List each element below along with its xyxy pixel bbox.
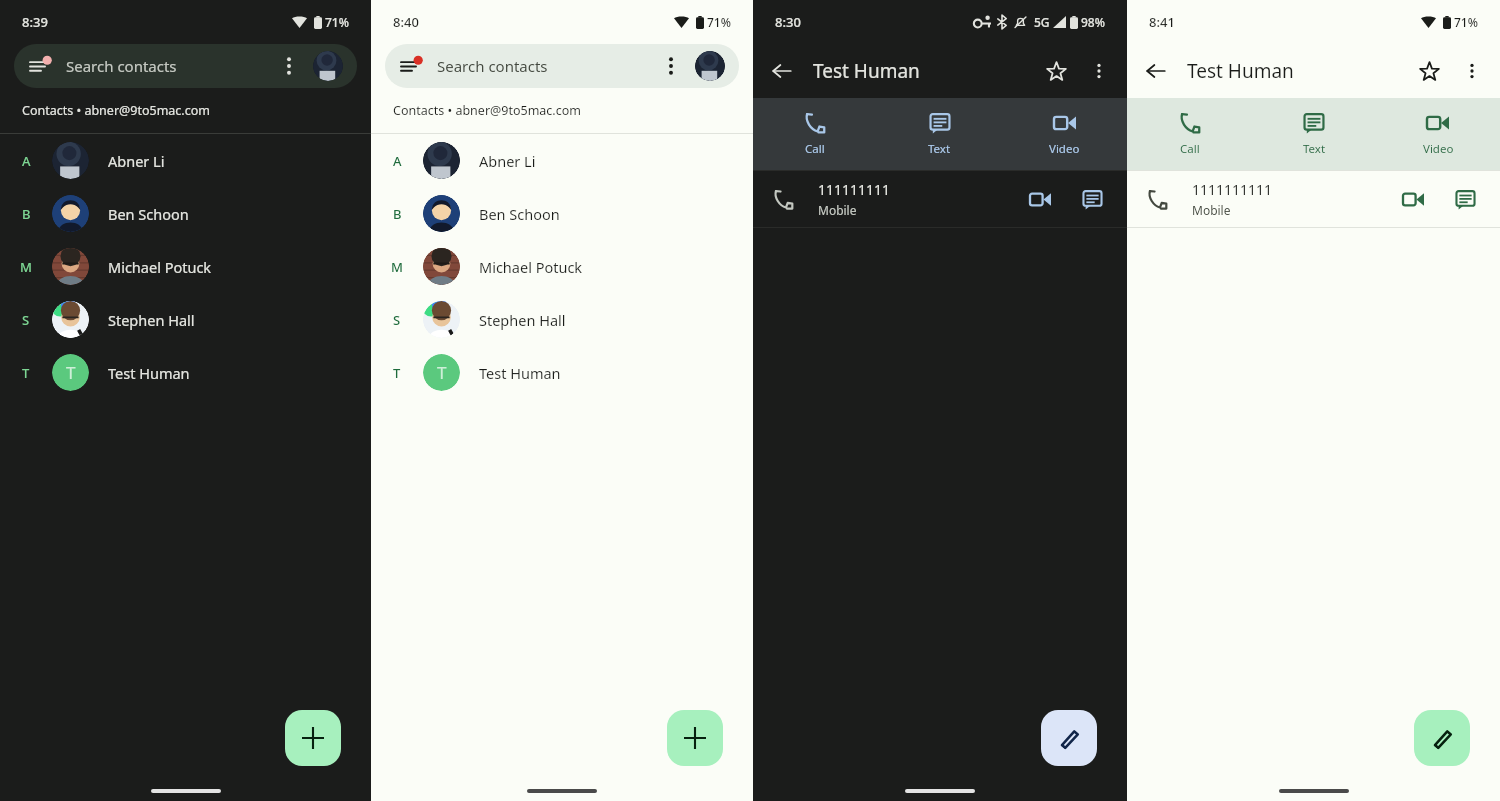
staticText: T [66, 361, 76, 384]
staticText: 8:41 [1149, 13, 1175, 31]
button[interactable]: Favorite [1041, 56, 1071, 86]
staticText: Test Human [813, 58, 920, 84]
button[interactable]: Video [1376, 98, 1500, 170]
button[interactable]: Send message [1450, 184, 1480, 214]
other: Menu [28, 54, 52, 78]
button[interactable]: Account [313, 51, 343, 81]
staticText: Stephen Hall [108, 310, 195, 330]
button[interactable]: More options [277, 54, 301, 78]
other: Menu [399, 54, 423, 78]
button[interactable]: Back [767, 56, 797, 86]
staticText: A [22, 152, 31, 170]
button[interactable]: Text [1252, 98, 1376, 170]
button[interactable]: Edit contact [1414, 710, 1470, 766]
staticText: T [437, 361, 447, 384]
staticText: 71% [1454, 14, 1478, 30]
button[interactable]: M [0, 240, 371, 293]
staticText: A [393, 152, 402, 170]
button[interactable]: More options [659, 54, 683, 78]
button[interactable]: Menu [385, 44, 739, 88]
staticText: T [22, 364, 30, 382]
button[interactable]: Account [695, 51, 725, 81]
button[interactable]: B [371, 187, 753, 240]
button[interactable]: T [0, 346, 371, 399]
staticText: Call [805, 141, 825, 157]
button[interactable]: Call [1127, 98, 1252, 170]
button[interactable]: Video call [1398, 184, 1428, 214]
staticText: M [391, 258, 403, 276]
staticText: Text [928, 141, 951, 157]
staticText: Ben Schoon [108, 204, 189, 224]
staticText: B [393, 205, 402, 223]
button[interactable]: S [371, 293, 753, 346]
staticText: B [22, 205, 31, 223]
staticText: Michael Potuck [108, 257, 212, 277]
button[interactable]: B [0, 187, 371, 240]
staticText: Search contacts [437, 56, 548, 76]
staticText: M [20, 258, 32, 276]
button[interactable]: 1111111111 [1127, 171, 1500, 227]
staticText: 5G [1034, 14, 1050, 30]
staticText: 8:40 [393, 13, 419, 31]
staticText: Mobile [818, 202, 857, 218]
button[interactable]: 111111111 [753, 171, 1127, 227]
staticText: Ben Schoon [479, 204, 560, 224]
staticText: Contacts • abner@9to5mac.com [393, 102, 581, 119]
staticText: 1111111111 [1192, 180, 1273, 199]
button[interactable]: A [371, 134, 753, 187]
button[interactable]: More options [1458, 57, 1486, 85]
staticText: Abner Li [108, 151, 165, 171]
staticText: Text [1303, 141, 1326, 157]
button[interactable]: Text [877, 98, 1002, 170]
button[interactable]: Menu [14, 44, 357, 88]
staticText: 111111111 [818, 180, 891, 199]
button[interactable]: Send message [1077, 184, 1107, 214]
button[interactable]: Back [1141, 56, 1171, 86]
button[interactable]: S [0, 293, 371, 346]
button[interactable]: Edit contact [1041, 710, 1097, 766]
staticText: 71% [707, 14, 731, 30]
button[interactable]: Video [1002, 98, 1127, 170]
staticText: Stephen Hall [479, 310, 566, 330]
staticText: Video [1423, 141, 1454, 157]
staticText: 8:39 [22, 13, 48, 31]
button[interactable]: T [371, 346, 753, 399]
button[interactable]: Video call [1025, 184, 1055, 214]
staticText: S [393, 311, 401, 329]
staticText: S [22, 311, 30, 329]
button[interactable]: M [371, 240, 753, 293]
button[interactable]: A [0, 134, 371, 187]
button[interactable]: Create contact [667, 710, 723, 766]
staticText: Test Human [1187, 58, 1294, 84]
staticText: T [393, 364, 401, 382]
staticText: Test Human [108, 363, 190, 383]
button[interactable]: Create contact [285, 710, 341, 766]
staticText: Michael Potuck [479, 257, 583, 277]
staticText: 98% [1081, 14, 1105, 30]
button[interactable]: More options [1085, 57, 1113, 85]
staticText: Search contacts [66, 56, 177, 76]
staticText: Video [1049, 141, 1080, 157]
button[interactable]: Favorite [1414, 56, 1444, 86]
staticText: Abner Li [479, 151, 536, 171]
staticText: 71% [325, 14, 349, 30]
staticText: Test Human [479, 363, 561, 383]
button[interactable]: Call [753, 98, 877, 170]
staticText: Mobile [1192, 202, 1231, 218]
staticText: Contacts • abner@9to5mac.com [22, 102, 210, 119]
staticText: 8:30 [775, 13, 801, 31]
staticText: Call [1180, 141, 1200, 157]
